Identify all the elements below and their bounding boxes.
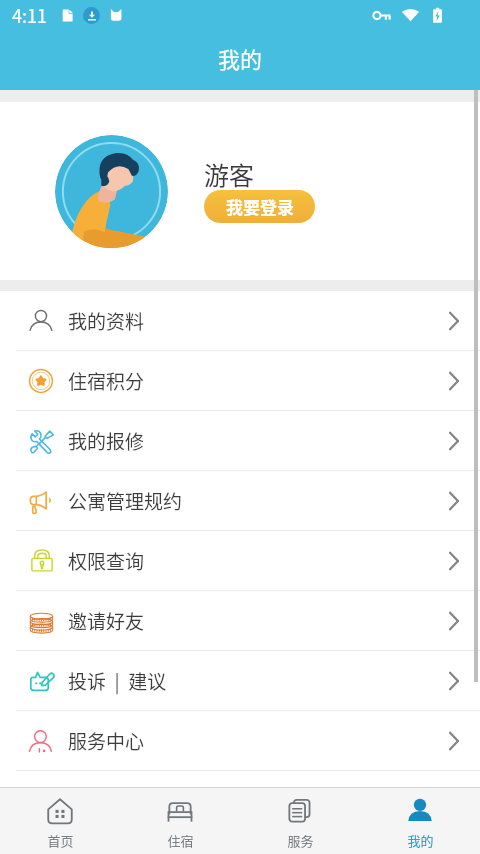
button[interactable]: 我的资料 — [0, 291, 480, 350]
button[interactable]: 住宿 — [120, 788, 240, 854]
button[interactable]: 我的 — [360, 788, 480, 854]
staticText: 权限查询 — [68, 547, 145, 575]
staticText: 我的报修 — [68, 427, 145, 455]
button[interactable]: 游客 — [0, 102, 480, 280]
button[interactable]: 我要登录 — [204, 190, 315, 223]
staticText: 我要登录 — [226, 194, 294, 219]
staticText: 我的资料 — [68, 307, 145, 335]
button[interactable]: 邀请好友 — [0, 591, 480, 650]
staticText: 服务 — [287, 831, 314, 850]
staticText: 住宿积分 — [68, 367, 145, 395]
staticText: 邀请好友 — [68, 607, 145, 635]
staticText: 游客 — [204, 156, 255, 192]
staticText: 我的 — [218, 42, 263, 74]
staticText: 我的 — [407, 831, 434, 850]
staticText: 住宿 — [167, 831, 194, 850]
staticText: 4:11 — [12, 2, 47, 28]
button[interactable]: 服务 — [240, 788, 360, 854]
staticText: 服务中心 — [68, 727, 145, 755]
button[interactable]: 权限查询 — [0, 531, 480, 590]
button[interactable]: 投诉 | 建议 — [0, 651, 480, 710]
button[interactable]: 公寓管理规约 — [0, 471, 480, 530]
button[interactable]: 服务中心 — [0, 711, 480, 770]
staticText: 投诉 | 建议 — [68, 667, 167, 695]
button[interactable]: 住宿积分 — [0, 351, 480, 410]
button[interactable]: 首页 — [0, 788, 120, 854]
staticText: 首页 — [47, 831, 74, 850]
button[interactable]: 我的报修 — [0, 411, 480, 470]
staticText: 公寓管理规约 — [68, 487, 183, 515]
